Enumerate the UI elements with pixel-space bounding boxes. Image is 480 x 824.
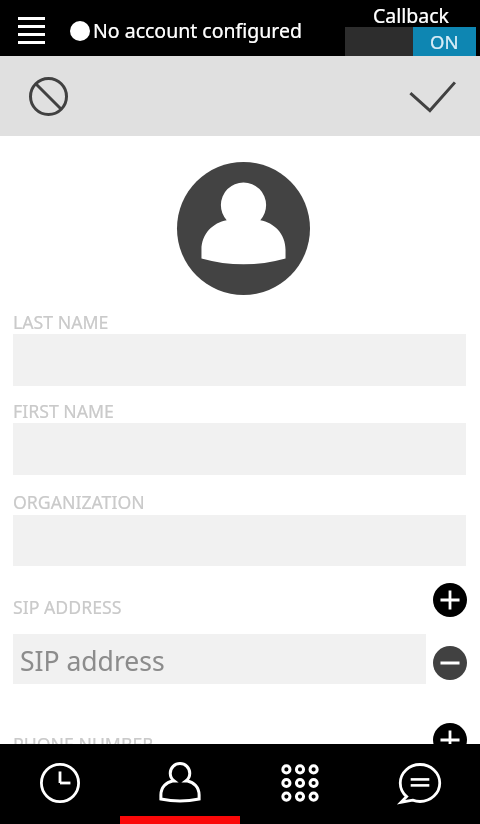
staticText: LAST NAME <box>13 310 109 334</box>
button[interactable]: ON <box>345 27 476 56</box>
staticText: Callback <box>373 2 450 29</box>
button[interactable]: Menu <box>0 3 64 53</box>
button[interactable]: Chat <box>360 744 480 824</box>
staticText: No account configured <box>93 17 303 44</box>
staticText: SIP address <box>20 643 165 679</box>
button[interactable]: Remove <box>433 646 467 680</box>
button[interactable]: Cancel <box>18 66 78 126</box>
staticText: FIRST NAME <box>13 399 114 423</box>
button[interactable]: Recent calls <box>0 744 120 824</box>
button[interactable]: Contacts <box>120 744 240 824</box>
staticText: ORGANIZATION <box>13 490 145 514</box>
staticText: SIP ADDRESS <box>13 595 122 619</box>
button[interactable]: Dialpad <box>240 744 360 824</box>
button[interactable]: Confirm <box>400 64 464 128</box>
button[interactable]: SIP address <box>13 634 426 684</box>
staticText: ON <box>430 29 459 54</box>
button[interactable]: Add phone number <box>433 723 467 757</box>
staticText: PHONE NUMBER <box>13 732 154 756</box>
button[interactable]: Add <box>433 583 467 617</box>
